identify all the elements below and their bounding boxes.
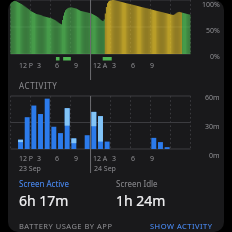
staticText: SHOW ACTIVITY <box>150 221 213 231</box>
button[interactable]: SHOW ACTIVITY <box>150 221 213 231</box>
staticText: 100% <box>202 0 220 10</box>
staticText: 1h 24m <box>116 191 166 210</box>
staticText: 3 <box>37 154 42 164</box>
staticText: 12 P <box>19 154 34 164</box>
staticText: 6h 17m <box>19 191 69 210</box>
staticText: ACTIVITY <box>19 80 58 91</box>
staticText: 50% <box>206 26 220 36</box>
staticText: 6 <box>131 154 136 164</box>
button[interactable]: Screen Active <box>19 178 116 210</box>
staticText: Screen Active <box>19 178 69 189</box>
staticText: 24 Sep <box>94 164 116 174</box>
staticText: 6 <box>55 61 60 71</box>
staticText: 9 <box>150 154 155 164</box>
staticText: 9 <box>150 61 155 71</box>
staticText: 12 A <box>93 154 108 164</box>
button[interactable]: Screen Idle <box>116 178 213 210</box>
staticText: 12 A <box>93 61 108 71</box>
staticText: 30m <box>205 122 220 132</box>
staticText: 23 Sep <box>19 164 41 174</box>
staticText: 0m <box>209 151 220 161</box>
staticText: 0% <box>210 52 220 62</box>
staticText: 3 <box>112 154 117 164</box>
staticText: Screen Idle <box>116 178 158 189</box>
staticText: 60m <box>205 93 220 103</box>
staticText: 3 <box>37 61 42 71</box>
staticText: 12 P <box>19 61 34 71</box>
staticText: BATTERY USAGE BY APP <box>19 221 150 231</box>
staticText: 6 <box>55 154 60 164</box>
staticText: 9 <box>74 154 79 164</box>
staticText: 3 <box>112 61 117 71</box>
staticText: 6 <box>131 61 136 71</box>
staticText: 9 <box>74 61 79 71</box>
